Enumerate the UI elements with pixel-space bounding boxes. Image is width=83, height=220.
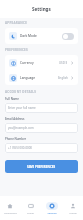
button[interactable]: Enter your full name [5,103,78,113]
button[interactable]: you@example.com [5,123,78,133]
button[interactable]: Dashboard [0,196,20,220]
staticText: you@example.com [8,126,34,130]
button[interactable]: Language [5,70,78,85]
staticText: Currency [20,61,34,65]
staticText: APPEARANCE [5,21,28,25]
staticText: Profile [69,211,77,214]
button[interactable]: Wallet [20,196,41,220]
staticText: Full Name [5,97,19,101]
button[interactable]: Dark Mode [5,28,78,44]
button[interactable]: Toggle dark mode [62,33,74,40]
staticText: Email Address [5,117,25,121]
staticText: Dark Mode [20,34,37,38]
staticText: USD $ [59,61,68,65]
button[interactable]: Currency [5,55,78,70]
staticText: Enter your full name [8,106,36,110]
staticText: English [58,76,68,80]
staticText: Settings [32,6,51,12]
button[interactable]: Settings [41,196,62,220]
staticText: Wallet [27,211,34,214]
staticText: Phone Number [5,137,27,141]
staticText: Language [20,76,36,80]
staticText: SAVE PREFERENCES [27,165,56,169]
staticText: PREFERENCES [5,48,28,52]
staticText: ACCOUNT DETAILS [5,90,37,94]
button[interactable]: SAVE PREFERENCES [5,160,78,173]
button[interactable]: +1 (555) 000-0000 [5,143,78,153]
staticText: Dashboard [4,211,17,214]
staticText: Settings [47,211,57,214]
button[interactable]: Profile [62,196,83,220]
staticText: +1 (555) 000-0000 [8,146,33,150]
